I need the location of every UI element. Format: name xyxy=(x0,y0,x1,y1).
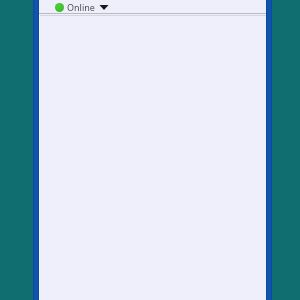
staticText: Online xyxy=(67,1,95,13)
other: Change status xyxy=(99,0,109,14)
button[interactable]: Online xyxy=(53,0,111,14)
